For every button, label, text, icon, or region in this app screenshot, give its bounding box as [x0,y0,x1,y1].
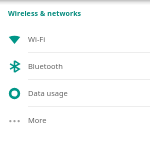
button[interactable]: Bluetooth [0,53,150,79]
staticText: Data usage [28,88,68,98]
button[interactable]: More [0,107,150,133]
staticText: Bluetooth [28,61,63,71]
staticText: More [28,115,47,125]
staticText: Wi-Fi [28,34,46,44]
button[interactable]: Wi-Fi [0,26,150,52]
button[interactable]: Data usage [0,80,150,106]
staticText: Wireless & networks [8,9,82,19]
